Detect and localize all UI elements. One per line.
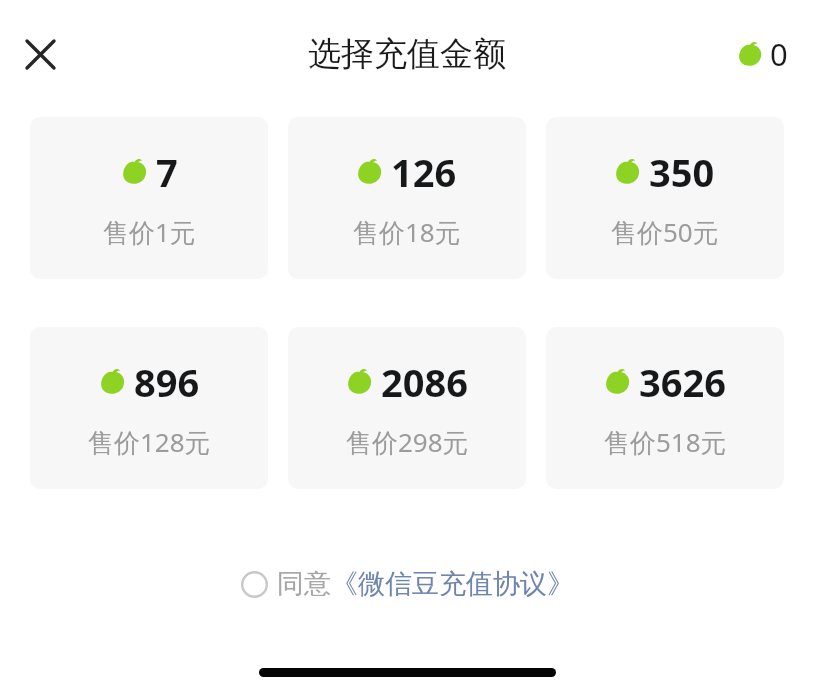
staticText: 售价18元 (353, 214, 461, 250)
staticText: 售价518元 (604, 424, 727, 460)
button[interactable]: 126 (288, 117, 526, 279)
button[interactable]: 《微信豆充值协议》 (331, 561, 574, 607)
staticText: 售价298元 (346, 424, 469, 460)
staticText: 售价1元 (103, 214, 196, 250)
button[interactable]: Close (12, 26, 68, 82)
button[interactable]: 350 (546, 117, 784, 279)
staticText: 0 (770, 33, 788, 75)
staticText: 2086 (381, 356, 468, 408)
button[interactable]: 7 (30, 117, 268, 279)
button[interactable]: 896 (30, 327, 268, 489)
staticText: 350 (649, 146, 715, 198)
button[interactable]: 3626 (546, 327, 784, 489)
staticText: 7 (156, 146, 178, 198)
staticText: 3626 (639, 356, 726, 408)
button[interactable]: 2086 (288, 327, 526, 489)
staticText: 售价128元 (88, 424, 211, 460)
staticText: 126 (391, 146, 457, 198)
staticText: 896 (134, 356, 200, 408)
button[interactable]: 同意 (241, 561, 331, 607)
button[interactable]: 0 (738, 33, 788, 75)
staticText: 选择充值金额 (308, 33, 506, 75)
staticText: 同意 (277, 567, 331, 601)
staticText: 售价50元 (611, 214, 719, 250)
